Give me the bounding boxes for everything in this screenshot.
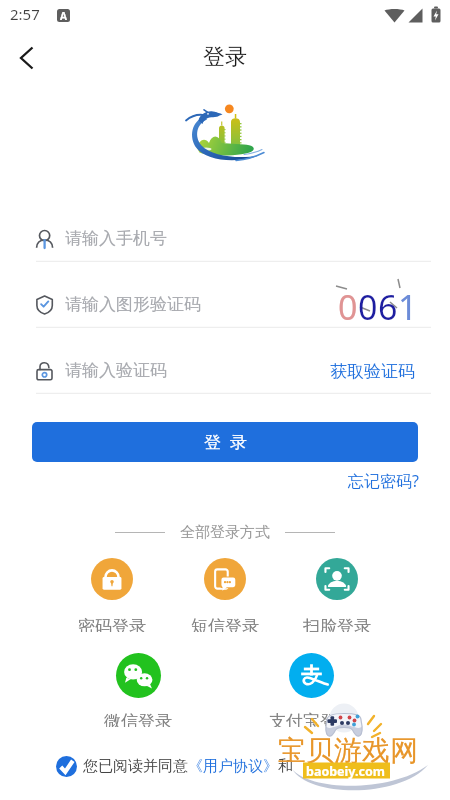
button[interactable]: 您已阅读并同意 — [56, 756, 293, 780]
staticText: 0 — [358, 284, 378, 330]
staticText: 请输入图形验证码 — [65, 294, 201, 315]
staticText: 扫脸登录 — [303, 616, 371, 632]
staticText: 支付宝登录 — [269, 711, 354, 727]
staticText: 您已阅读并同意 — [83, 757, 188, 776]
staticText: 请输入手机号 — [65, 228, 167, 249]
staticText: 6 — [378, 284, 398, 330]
button[interactable]: 微信登录 — [90, 653, 186, 727]
staticText: 登录 — [203, 43, 247, 71]
staticText: 忘记密码? — [348, 470, 419, 492]
button[interactable]: 请输入手机号 — [0, 196, 450, 262]
button[interactable]: 支付宝登录 — [263, 653, 359, 727]
staticText: 获取验证码 — [330, 361, 415, 382]
button[interactable]: 获取验证码 — [320, 355, 424, 387]
staticText: 宝贝游戏网 — [278, 733, 418, 768]
button[interactable]: Back — [0, 33, 48, 79]
staticText: 微信登录 — [104, 711, 172, 727]
button[interactable]: 扫脸登录 — [289, 558, 385, 632]
button[interactable]: 请输入图形验证码 — [0, 262, 450, 328]
staticText: 和 — [278, 757, 293, 776]
staticText: 0 — [338, 284, 358, 330]
button[interactable]: Refresh captcha — [334, 274, 418, 320]
staticText: 登 录 — [204, 430, 247, 453]
button[interactable]: 请输入验证码 — [0, 328, 450, 394]
button[interactable]: 密码登录 — [64, 558, 160, 632]
staticText: 短信登录 — [191, 616, 259, 632]
staticText: 《用户协议》 — [188, 757, 278, 776]
button[interactable]: 短信登录 — [177, 558, 273, 632]
staticText: 密码登录 — [78, 616, 146, 632]
staticText: 1 — [398, 284, 418, 330]
staticText: 全部登录方式 — [180, 523, 270, 542]
button[interactable]: 登 录 — [32, 422, 418, 462]
staticText: A — [60, 9, 67, 22]
staticText: 请输入验证码 — [65, 360, 167, 381]
staticText: 2:57 — [10, 4, 40, 24]
staticText: baobeiy.com — [306, 763, 385, 780]
button[interactable]: 忘记密码? — [339, 470, 419, 492]
